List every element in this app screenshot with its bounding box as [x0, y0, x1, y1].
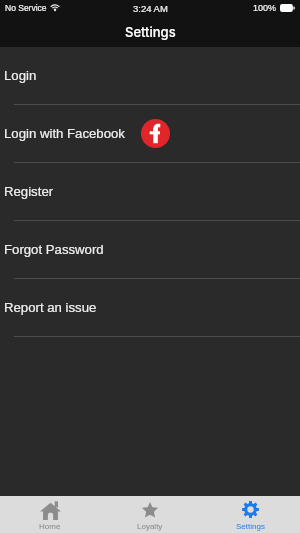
staticText: No Service [5, 3, 47, 12]
button[interactable]: Report an issue [0, 279, 300, 337]
button[interactable]: Login [0, 47, 300, 105]
staticText: 100% [253, 3, 277, 13]
staticText: 3:24 AM [133, 3, 168, 14]
button[interactable]: Loyalty [100, 496, 200, 533]
staticText: Loyalty [137, 522, 163, 531]
button[interactable]: Forgot Password [0, 221, 300, 279]
button[interactable]: Register [0, 163, 300, 221]
button[interactable]: Home [0, 496, 100, 533]
staticText: Login with Facebook [4, 126, 125, 141]
staticText: Home [39, 522, 61, 531]
button[interactable]: Login with Facebook [0, 105, 300, 163]
staticText: Settings [125, 24, 176, 40]
staticText: Report an issue [4, 300, 97, 315]
button[interactable]: Login with Facebook [141, 119, 170, 148]
staticText: Forgot Password [4, 242, 104, 257]
staticText: Settings [236, 522, 265, 531]
button[interactable]: Settings [200, 496, 300, 533]
staticText: Login [4, 68, 37, 83]
staticText: Register [4, 184, 54, 199]
